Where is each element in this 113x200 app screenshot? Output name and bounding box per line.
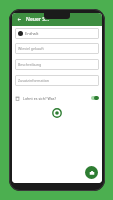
button[interactable]: Enthalt	[15, 28, 99, 39]
staticText: Enthalt	[25, 31, 39, 36]
staticText: Zusatzinformation	[18, 78, 50, 83]
button[interactable]: Capture	[52, 108, 62, 118]
button[interactable]: Beschreibung	[15, 59, 99, 70]
staticText: Wieviel gekauft	[18, 46, 44, 51]
staticText: Neuer S...	[26, 16, 50, 23]
button[interactable]: Back	[15, 15, 24, 24]
staticText: Beschreibung	[18, 62, 42, 67]
button[interactable]: Zusatzinformation	[15, 75, 99, 86]
button[interactable]: Toggle	[91, 96, 99, 100]
button[interactable]: Add	[85, 166, 98, 179]
button[interactable]: Wieviel gekauft	[15, 43, 99, 54]
staticText: Lohnt es sich? Was?	[23, 96, 57, 101]
button[interactable]: Lohnt es sich? Was?	[15, 92, 99, 104]
